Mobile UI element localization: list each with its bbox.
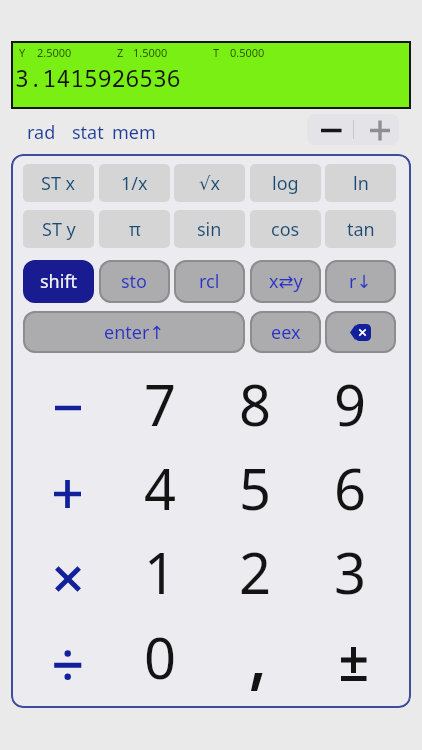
button[interactable]: enter↑ [23, 311, 245, 353]
staticText: r↓ [349, 269, 372, 294]
button[interactable]: 2 [213, 533, 297, 611]
button[interactable]: 4 [118, 449, 202, 527]
button[interactable]: rad [27, 120, 56, 145]
staticText: rcl [199, 269, 220, 294]
staticText: T [213, 45, 220, 60]
button[interactable]: log [250, 164, 321, 202]
staticText: 3 [334, 534, 367, 610]
staticText: Z [117, 45, 124, 60]
button[interactable] [325, 311, 396, 353]
button[interactable]: √x [174, 164, 245, 202]
button[interactable]: 3 [308, 533, 392, 611]
staticText: 6 [334, 450, 367, 526]
button[interactable]: rcl [174, 260, 245, 303]
button[interactable]: mem [112, 120, 156, 145]
staticText: 9 [334, 366, 367, 442]
button[interactable] [307, 114, 353, 145]
staticText: sto [121, 269, 148, 294]
button[interactable]: 5 [213, 449, 297, 527]
button[interactable] [36, 455, 100, 533]
button[interactable]: π [99, 210, 170, 248]
button[interactable] [36, 620, 100, 698]
button[interactable]: sto [99, 260, 170, 303]
button[interactable]: shift [23, 260, 94, 303]
button[interactable]: cos [250, 210, 321, 248]
button[interactable]: x⇄y [250, 260, 321, 303]
staticText: π [129, 217, 141, 242]
staticText: Y [19, 45, 26, 60]
button[interactable] [353, 114, 399, 145]
staticText: x⇄y [269, 269, 303, 294]
staticText: tan [347, 217, 375, 242]
staticText: 0.5000 [230, 45, 265, 60]
staticText: 1 [144, 534, 177, 610]
button[interactable] [36, 540, 100, 618]
button[interactable]: sin [174, 210, 245, 248]
staticText: enter↑ [104, 320, 165, 345]
button[interactable]: stat [72, 120, 104, 145]
button[interactable] [308, 618, 392, 696]
button[interactable] [213, 618, 297, 696]
button[interactable]: eex [250, 311, 321, 353]
staticText: 7 [144, 366, 177, 442]
button[interactable]: 8 [213, 365, 297, 443]
staticText: log [272, 171, 299, 196]
button[interactable]: ST x [23, 164, 94, 202]
staticText: 2.5000 [37, 45, 72, 60]
staticText: 5 [239, 450, 272, 526]
staticText: ST x [41, 171, 76, 196]
button[interactable]: r↓ [325, 260, 396, 303]
staticText: √x [199, 171, 220, 196]
staticText: eex [271, 320, 301, 345]
staticText: 4 [144, 450, 177, 526]
staticText: cos [271, 217, 300, 242]
staticText: 8 [239, 366, 272, 442]
button[interactable]: 7 [118, 365, 202, 443]
button[interactable]: 6 [308, 449, 392, 527]
staticText: 1/x [121, 171, 148, 196]
button[interactable]: 1/x [99, 164, 170, 202]
staticText: ST y [42, 217, 76, 242]
button[interactable]: 9 [308, 365, 392, 443]
button[interactable]: 1 [118, 533, 202, 611]
staticText: 3.1415926536 [15, 62, 181, 93]
staticText: 2 [239, 534, 272, 610]
button[interactable] [36, 369, 100, 447]
button[interactable]: 0 [118, 618, 202, 696]
button[interactable]: ST y [23, 210, 94, 248]
staticText: 0 [144, 619, 177, 695]
button[interactable]: tan [325, 210, 396, 248]
staticText: shift [40, 269, 78, 294]
staticText: ln [353, 171, 369, 196]
button[interactable]: ln [325, 164, 396, 202]
staticText: 1.5000 [133, 45, 168, 60]
staticText: sin [197, 217, 222, 242]
